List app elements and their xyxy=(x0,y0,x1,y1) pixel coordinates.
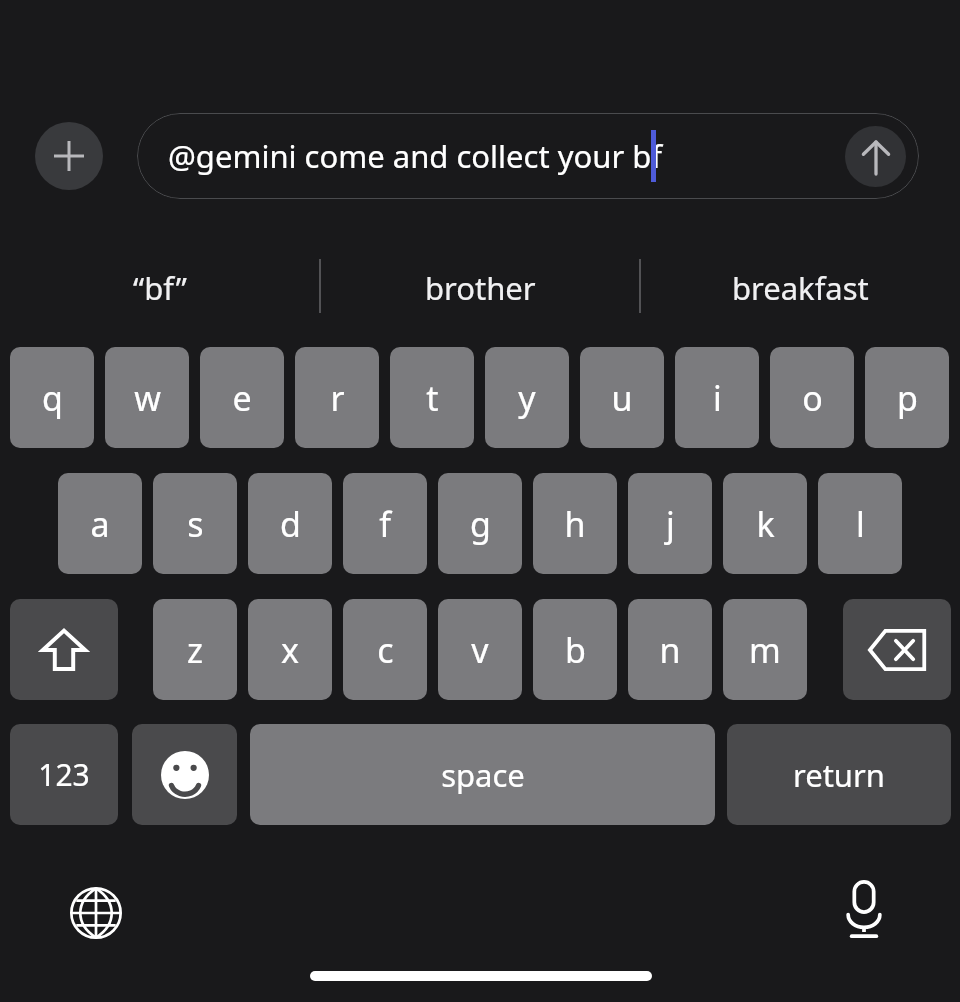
button[interactable]: “bf” xyxy=(0,230,320,346)
staticText: r xyxy=(330,375,345,421)
button[interactable]: w xyxy=(105,347,189,448)
staticText: @gemini come and collect your bf xyxy=(168,135,663,177)
button[interactable]: u xyxy=(580,347,664,448)
staticText: i xyxy=(713,375,722,421)
button[interactable]: m xyxy=(723,599,807,700)
staticText: o xyxy=(802,375,823,421)
button[interactable]: breakfast xyxy=(640,230,960,346)
button[interactable]: Voice input xyxy=(830,875,898,943)
staticText: p xyxy=(897,375,918,421)
staticText: t xyxy=(426,375,439,421)
button[interactable]: e xyxy=(200,347,284,448)
button[interactable]: l xyxy=(818,473,902,574)
staticText: k xyxy=(756,501,775,547)
button[interactable]: Change keyboard language xyxy=(62,879,130,947)
button[interactable]: c xyxy=(343,599,427,700)
button[interactable]: s xyxy=(153,473,237,574)
button[interactable]: v xyxy=(438,599,522,700)
button[interactable]: p xyxy=(865,347,949,448)
staticText: x xyxy=(281,627,299,673)
button[interactable]: Shift xyxy=(10,599,118,700)
staticText: z xyxy=(187,627,203,673)
staticText: d xyxy=(280,501,301,547)
button[interactable]: j xyxy=(628,473,712,574)
staticText: a xyxy=(90,501,110,547)
button[interactable]: h xyxy=(533,473,617,574)
button[interactable]: Backspace xyxy=(843,599,951,700)
button[interactable]: i xyxy=(675,347,759,448)
button[interactable]: y xyxy=(485,347,569,448)
button[interactable]: return xyxy=(727,724,951,825)
staticText: space xyxy=(441,754,525,796)
staticText: l xyxy=(856,501,865,547)
button[interactable]: d xyxy=(248,473,332,574)
button[interactable]: brother xyxy=(320,230,640,346)
staticText: y xyxy=(518,375,536,421)
button[interactable]: space xyxy=(250,724,715,825)
button[interactable]: t xyxy=(390,347,474,448)
staticText: n xyxy=(659,627,681,673)
button[interactable]: n xyxy=(628,599,712,700)
button[interactable]: @gemini come and collect your bf xyxy=(137,113,919,199)
staticText: 123 xyxy=(38,754,90,795)
button[interactable]: r xyxy=(295,347,379,448)
staticText: s xyxy=(187,501,204,547)
button[interactable]: f xyxy=(343,473,427,574)
button[interactable]: Send xyxy=(845,126,906,187)
button[interactable]: Emoji xyxy=(132,724,237,825)
staticText: h xyxy=(564,501,586,547)
staticText: e xyxy=(232,375,252,421)
staticText: breakfast xyxy=(732,267,869,309)
staticText: j xyxy=(666,501,675,547)
button[interactable]: o xyxy=(770,347,854,448)
staticText: u xyxy=(611,375,633,421)
staticText: m xyxy=(749,627,781,673)
staticText: b xyxy=(565,627,586,673)
button[interactable]: q xyxy=(10,347,94,448)
button[interactable]: b xyxy=(533,599,617,700)
button[interactable]: g xyxy=(438,473,522,574)
staticText: w xyxy=(134,375,161,421)
staticText: g xyxy=(470,501,491,547)
button[interactable]: x xyxy=(248,599,332,700)
staticText: return xyxy=(793,754,885,796)
staticText: q xyxy=(42,375,63,421)
staticText: brother xyxy=(425,267,536,309)
button[interactable]: z xyxy=(153,599,237,700)
staticText: “bf” xyxy=(133,267,187,309)
button[interactable]: 123 xyxy=(10,724,118,825)
staticText: c xyxy=(377,627,394,673)
staticText: v xyxy=(471,627,489,673)
button[interactable]: a xyxy=(58,473,142,574)
button[interactable]: Add attachment xyxy=(35,122,103,190)
staticText: f xyxy=(379,501,391,547)
button[interactable]: k xyxy=(723,473,807,574)
